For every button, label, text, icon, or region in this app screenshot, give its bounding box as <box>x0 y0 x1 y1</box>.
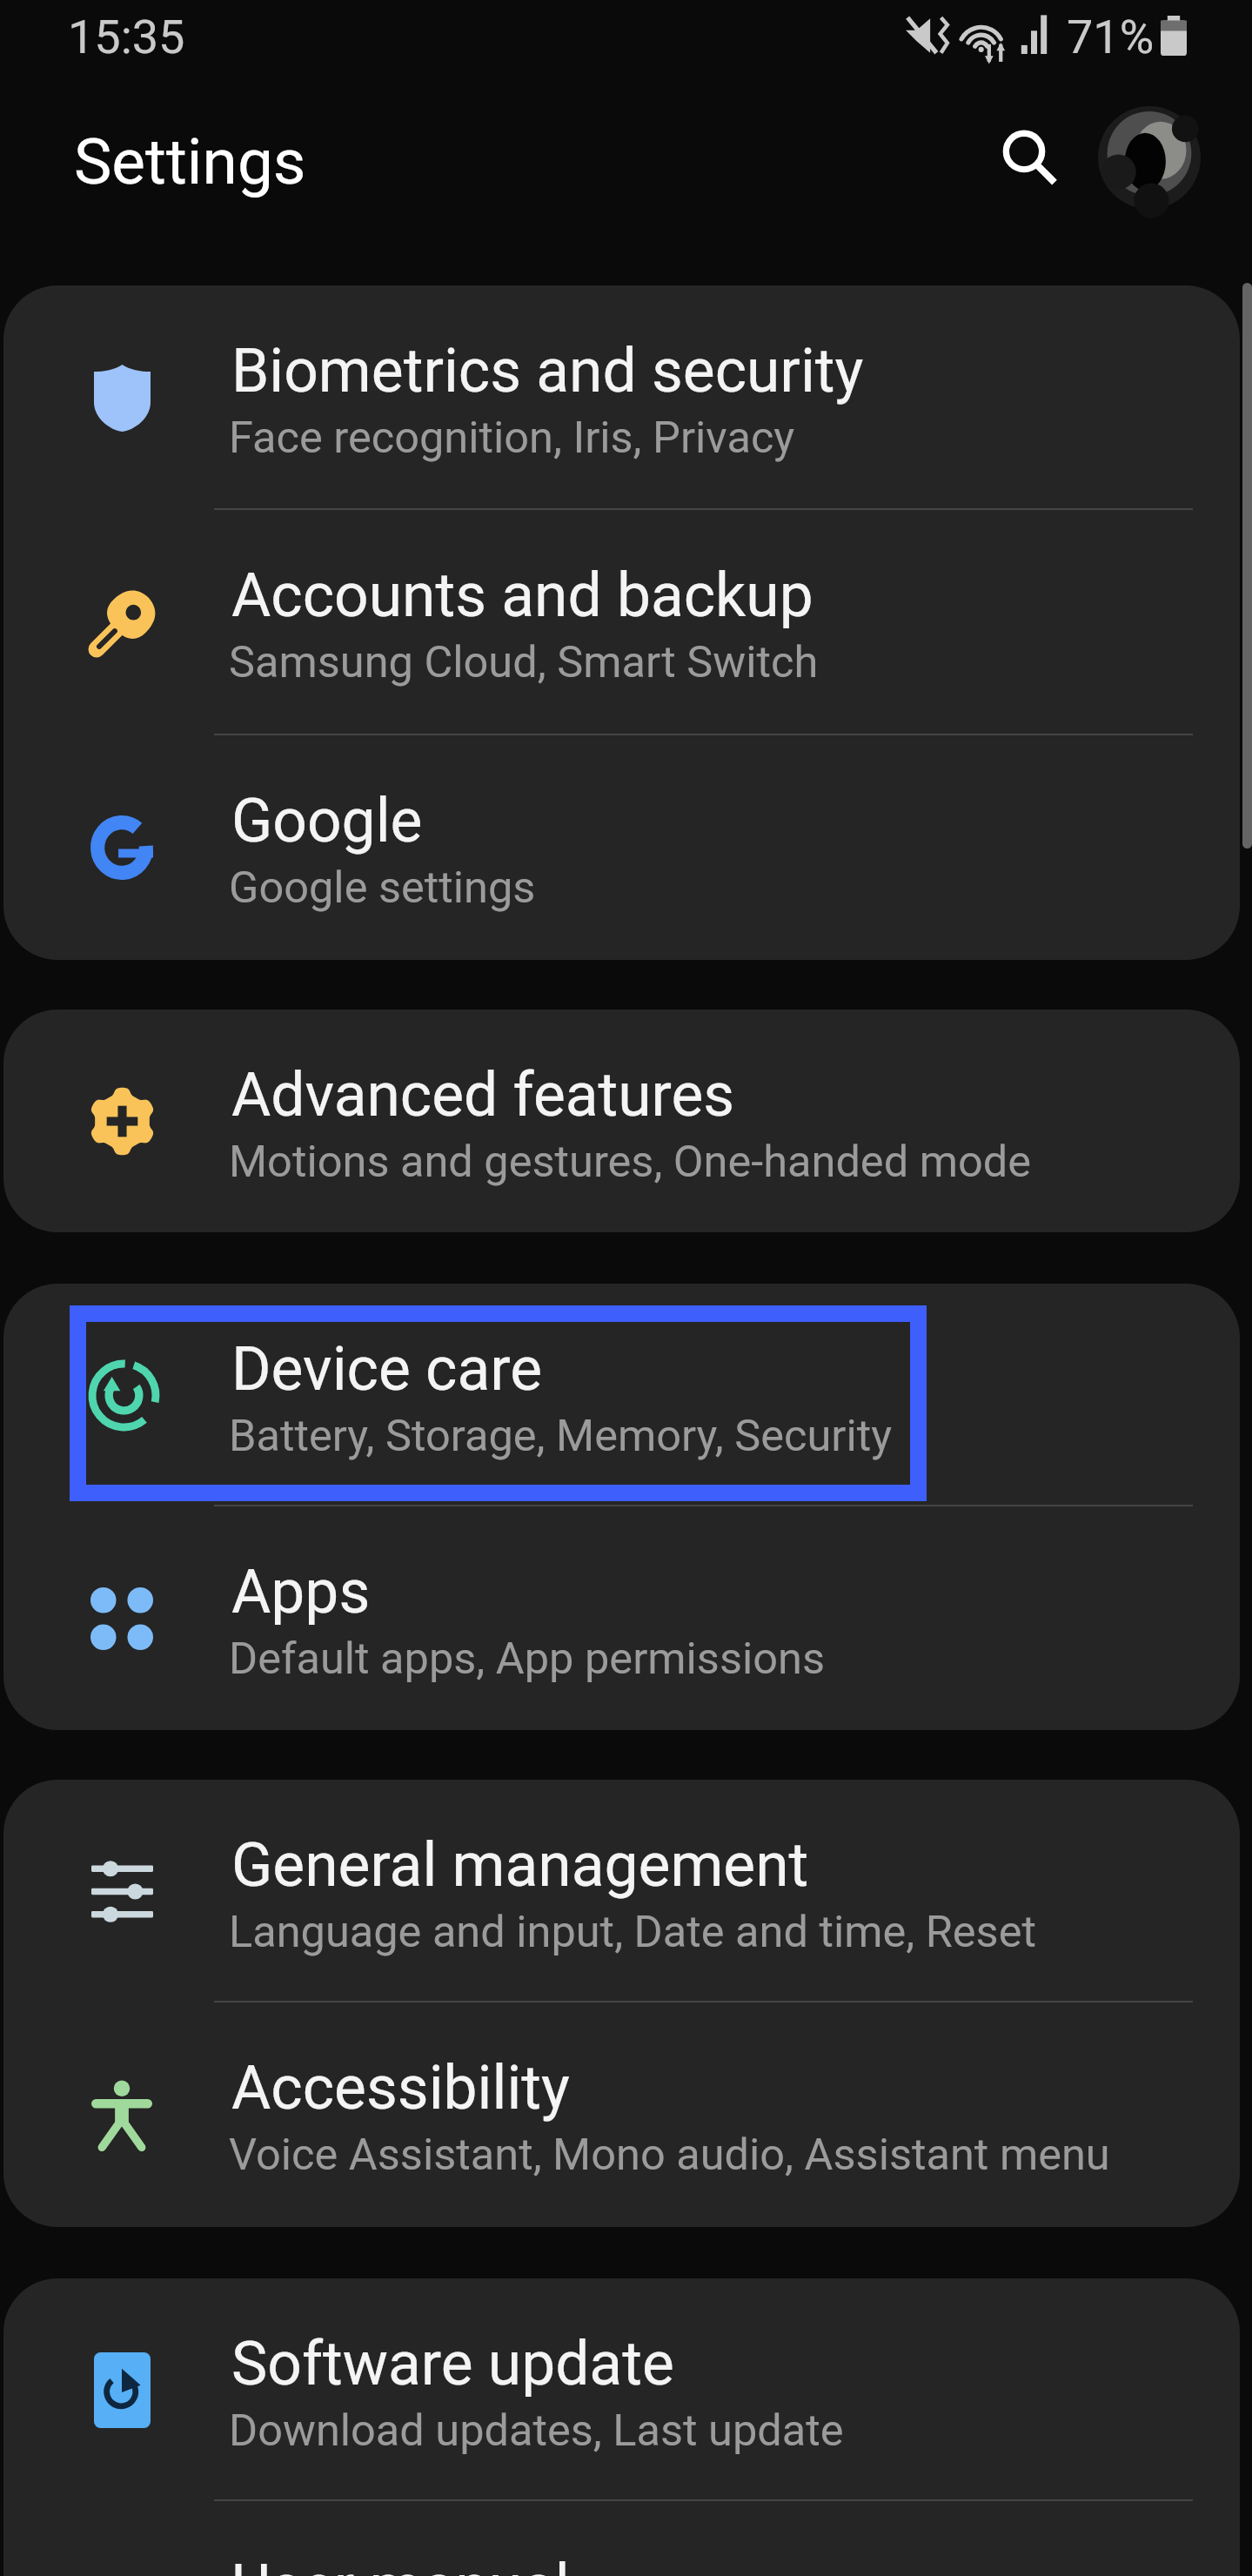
button[interactable]: General management <box>3 1780 1240 2002</box>
button[interactable]: Advanced features <box>3 1010 1240 1232</box>
staticText: Accessibility <box>231 2053 570 2123</box>
staticText: 71% <box>1067 10 1155 64</box>
staticText: Advanced features <box>231 1060 735 1130</box>
staticText: User manual <box>231 2552 570 2576</box>
staticText: Settings <box>74 124 306 199</box>
button[interactable]: Accounts and backup <box>3 510 1240 735</box>
staticText: Motions and gestures, One-handed mode <box>229 1136 1031 1187</box>
staticText: General management <box>231 1830 809 1901</box>
staticText: Samsung Cloud, Smart Switch <box>229 636 819 688</box>
button[interactable]: Device care <box>3 1284 1240 1506</box>
button[interactable]: Account <box>1098 106 1201 209</box>
staticText: Voice Assistant, Mono audio, Assistant m… <box>229 2129 1110 2180</box>
staticText: Battery, Storage, Memory, Security <box>229 1410 893 1461</box>
button[interactable]: Search <box>981 111 1079 208</box>
staticText: Accounts and backup <box>231 560 813 631</box>
button[interactable]: User manual <box>3 2501 1240 2576</box>
button[interactable]: Accessibility <box>3 2002 1240 2227</box>
staticText: Google <box>231 786 423 856</box>
staticText: Software update <box>231 2329 674 2399</box>
staticText: Language and input, Date and time, Reset <box>229 1906 1036 1957</box>
staticText: 15:35 <box>68 10 185 64</box>
staticText: Apps <box>231 1557 371 1627</box>
button[interactable]: Google <box>3 735 1240 960</box>
staticText: Face recognition, Iris, Privacy <box>229 412 795 463</box>
staticText: Biometrics and security <box>231 336 864 406</box>
button[interactable]: Apps <box>3 1506 1240 1730</box>
button[interactable]: Biometrics and security <box>3 285 1240 510</box>
staticText: Device care <box>231 1334 543 1405</box>
staticText: Default apps, App permissions <box>229 1633 825 1684</box>
button[interactable]: Software update <box>3 2278 1240 2501</box>
staticText: Download updates, Last update <box>229 2405 844 2456</box>
staticText: Google settings <box>229 862 536 913</box>
